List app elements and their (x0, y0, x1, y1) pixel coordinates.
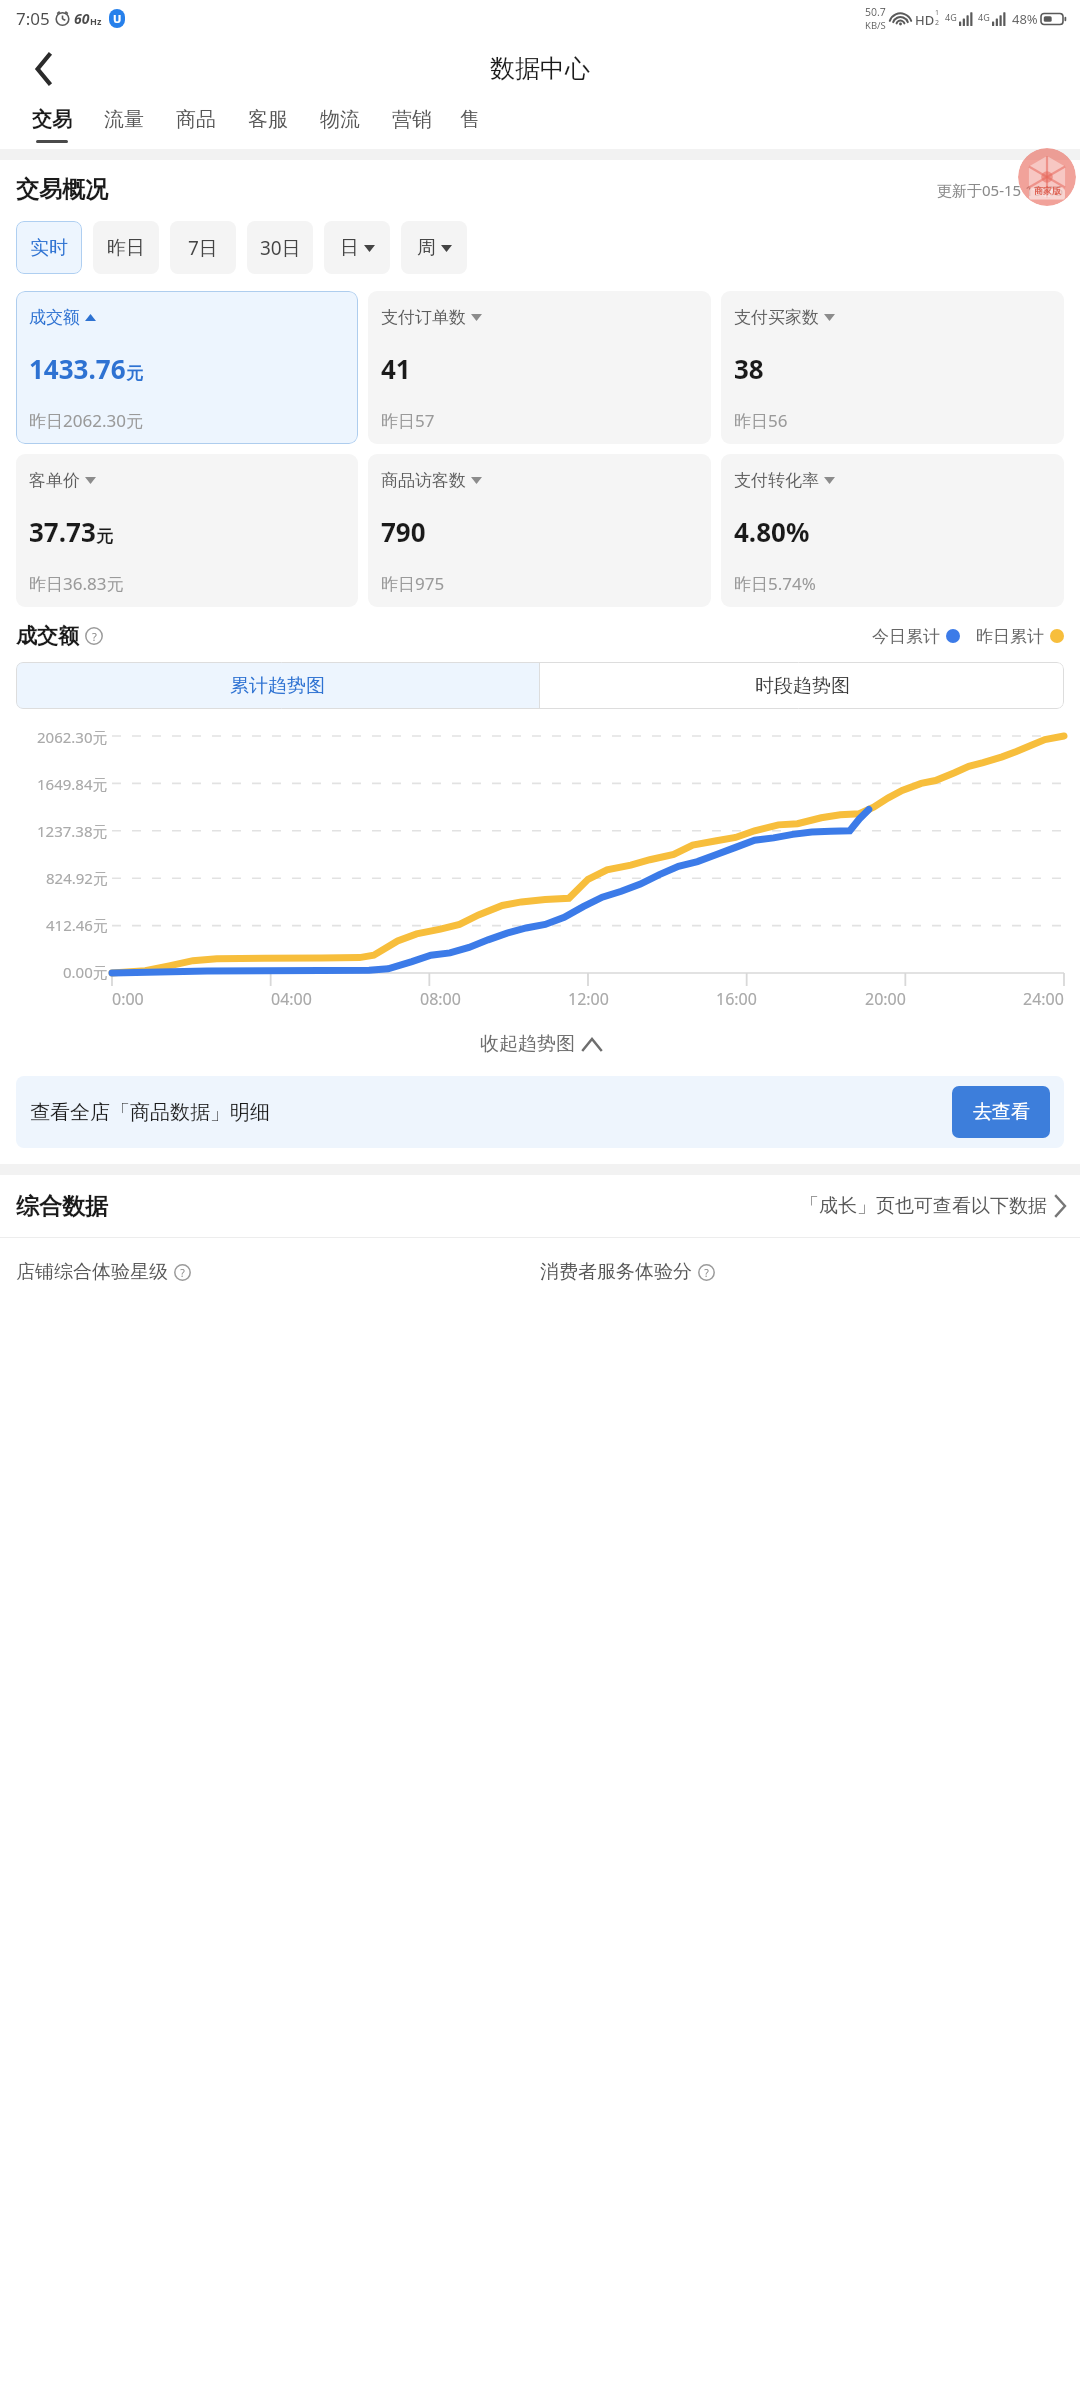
staticText: 0.00元 (63, 962, 108, 982)
staticText: 商家版 (1034, 185, 1061, 196)
button[interactable]: 收起趋势图 (0, 1024, 1080, 1064)
button[interactable]: 30日 (247, 221, 313, 274)
button[interactable]: Back (20, 45, 68, 93)
staticText: 商品 (176, 107, 216, 132)
staticText: 2062.30元 (37, 727, 108, 747)
staticText: 41 (381, 351, 411, 386)
staticText: 昨日5.74% (734, 572, 816, 595)
staticText: ? (92, 629, 97, 644)
staticText: 支付买家数 (734, 307, 819, 328)
staticText: 实时 (30, 236, 68, 260)
staticText: 60 (74, 9, 90, 28)
staticText: 37.73 (29, 514, 96, 549)
staticText: 店铺综合体验星级 (16, 1260, 168, 1284)
button[interactable]: 周 (401, 221, 467, 274)
staticText: 时段趋势图 (755, 674, 850, 698)
button[interactable]: 综合数据 (0, 1175, 1080, 1237)
staticText: 昨日36.83元 (29, 572, 124, 595)
button[interactable]: 实时 (16, 221, 82, 274)
staticText: 日 (340, 236, 359, 260)
staticText: 数据中心 (490, 53, 590, 84)
staticText: 元 (96, 526, 113, 547)
staticText: 更新于05-15 19:05 (937, 180, 1064, 200)
staticText: 营销 (392, 107, 432, 132)
staticText: 交易概况 (16, 175, 108, 204)
staticText: 交易 (32, 107, 72, 132)
staticText: 消费者服务体验分 (540, 1260, 692, 1284)
staticText: 0:00 (112, 988, 144, 1010)
button[interactable]: 支付买家数 (721, 291, 1064, 444)
staticText: ? (704, 1266, 709, 1280)
staticText: 04:00 (271, 988, 312, 1010)
staticText: 412.46元 (46, 915, 108, 935)
button[interactable]: 昨日 (93, 221, 159, 274)
button[interactable]: 商品 (160, 101, 232, 149)
button[interactable]: 流量 (88, 101, 160, 149)
staticText: 1649.84元 (37, 774, 108, 794)
staticText: 流量 (104, 107, 144, 132)
staticText: 客服 (248, 107, 288, 132)
staticText: 48% (1012, 10, 1038, 28)
button[interactable]: 客服 (232, 101, 304, 149)
staticText: 物流 (320, 107, 360, 132)
staticText: 12:00 (568, 988, 609, 1010)
staticText: 16:00 (716, 988, 757, 1010)
staticText: 收起趋势图 (480, 1032, 575, 1056)
staticText: 30日 (260, 235, 301, 261)
button[interactable]: 时段趋势图 (540, 662, 1064, 709)
button[interactable]: 查看全店「商品数据」明细 (16, 1076, 1064, 1148)
button[interactable]: 商品访客数 (368, 454, 711, 607)
staticText: 7:05 (16, 7, 50, 30)
staticText: 昨日975 (381, 572, 445, 595)
staticText: 累计趋势图 (230, 674, 325, 698)
staticText: 今日累计 (872, 626, 940, 647)
button[interactable]: 消费者服务体验分 (540, 1260, 1080, 1284)
staticText: 昨日累计 (976, 626, 1044, 647)
staticText: 4G (945, 11, 957, 23)
button[interactable]: 交易 (16, 101, 88, 149)
staticText: 昨日57 (381, 409, 435, 432)
staticText: 售 (460, 107, 480, 132)
staticText: 1 (935, 8, 940, 18)
button[interactable]: 营销 (376, 101, 448, 149)
button[interactable]: 店铺综合体验星级 (16, 1260, 540, 1284)
staticText: 「成长」页也可查看以下数据 (800, 1194, 1047, 1218)
staticText: KB/S (865, 19, 886, 32)
staticText: 824.92元 (46, 868, 108, 888)
staticText: ? (180, 1266, 185, 1280)
staticText: 去查看 (973, 1100, 1030, 1124)
button[interactable]: 客单价 (16, 454, 358, 607)
button[interactable]: 7日 (170, 221, 236, 274)
staticText: 昨日 (107, 236, 145, 260)
button[interactable]: 日 (324, 221, 390, 274)
button[interactable]: 成交额 (16, 291, 358, 444)
button[interactable]: 支付订单数 (368, 291, 711, 444)
staticText: 4G (978, 11, 990, 23)
staticText: 08:00 (420, 988, 461, 1010)
staticText: 20:00 (865, 988, 906, 1010)
staticText: U (113, 11, 122, 26)
staticText: 1237.38元 (37, 821, 108, 841)
staticText: 790 (381, 514, 426, 549)
staticText: 周 (417, 236, 436, 260)
staticText: 查看全店「商品数据」明细 (30, 1100, 270, 1125)
staticText: 客单价 (29, 470, 80, 491)
staticText: 昨日56 (734, 409, 788, 432)
staticText: 昨日2062.30元 (29, 409, 143, 432)
staticText: 24:00 (1023, 988, 1064, 1010)
staticText: 50.7 (865, 5, 886, 19)
staticText: 支付转化率 (734, 470, 819, 491)
staticText: 38 (734, 351, 764, 386)
staticText: 7日 (188, 235, 218, 261)
button[interactable]: Merchant app badge (1018, 148, 1076, 206)
button[interactable]: 物流 (304, 101, 376, 149)
staticText: 4.80% (734, 514, 810, 549)
staticText: 成交额 (16, 623, 79, 649)
staticText: 元 (126, 363, 143, 384)
button[interactable]: 去查看 (952, 1086, 1050, 1138)
button[interactable]: 售 (448, 101, 492, 149)
staticText: Hz (90, 15, 102, 27)
button[interactable]: 累计趋势图 (16, 662, 539, 709)
staticText: 综合数据 (16, 1192, 108, 1221)
button[interactable]: 支付转化率 (721, 454, 1064, 607)
